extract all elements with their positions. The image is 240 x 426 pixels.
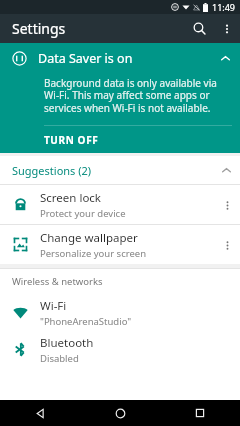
staticText: Background data is only available via Wi… — [44, 76, 226, 115]
button[interactable]: Screen lock options — [214, 192, 240, 218]
staticText: Change wallpaper — [40, 230, 138, 246]
button[interactable]: Search — [185, 14, 214, 43]
staticText: Screen lock — [40, 190, 102, 206]
staticText: TURN OFF — [44, 133, 99, 147]
staticText: Suggestions (2) — [12, 163, 92, 178]
staticText: Data Saver is on — [38, 50, 210, 67]
button[interactable]: Change wallpaper — [0, 225, 240, 264]
button[interactable]: Change wallpaper options — [214, 232, 240, 258]
button[interactable]: Screen lock — [0, 185, 240, 224]
button[interactable]: Suggestions (2) — [0, 156, 240, 184]
staticText: 11:49 — [212, 1, 236, 13]
staticText: Protect your device — [40, 207, 126, 220]
button[interactable]: Home — [80, 400, 160, 426]
staticText: Settings — [12, 19, 66, 38]
button[interactable]: Collapse — [210, 43, 240, 73]
staticText: Bluetooth — [40, 335, 94, 351]
staticText: Wi-Fi — [40, 298, 67, 314]
button[interactable]: TURN OFF — [0, 126, 240, 153]
staticText: "PhoneArenaStudio" — [40, 315, 132, 328]
staticText: Disabled — [40, 352, 79, 365]
button[interactable]: Recent apps — [160, 400, 240, 426]
button[interactable]: Bluetooth — [0, 331, 240, 368]
button[interactable]: More options — [214, 16, 240, 42]
button[interactable]: Back — [0, 400, 80, 426]
button[interactable]: Wi-Fi — [0, 294, 240, 331]
staticText: Wireless & networks — [12, 275, 103, 288]
staticText: Personalize your screen — [40, 247, 147, 260]
